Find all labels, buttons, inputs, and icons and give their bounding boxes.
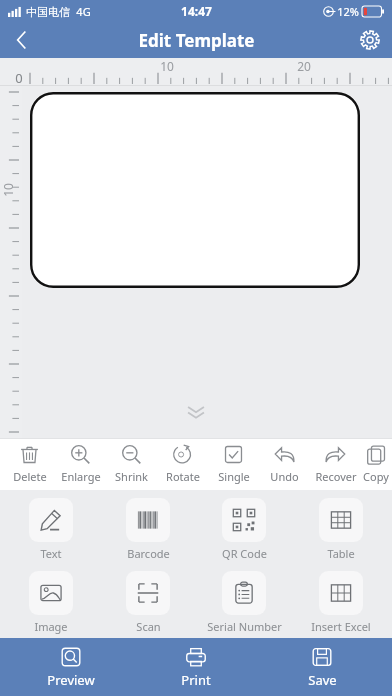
staticText: Print (181, 671, 211, 689)
staticText: Copy (363, 469, 389, 484)
staticText: Enlarge (61, 469, 101, 484)
button[interactable]: Table (295, 498, 387, 561)
button[interactable]: Enlarge (55, 438, 106, 490)
button[interactable]: Shrink (106, 438, 157, 490)
staticText: Edit Template (138, 29, 255, 52)
button[interactable]: Scan (102, 571, 194, 634)
button[interactable]: Back (0, 22, 44, 58)
staticText: Serial Number (207, 619, 282, 634)
staticText: Delete (13, 469, 47, 484)
button[interactable]: Print (141, 638, 251, 696)
staticText: 10 (160, 58, 174, 74)
staticText: Save (308, 671, 337, 689)
staticText: 0 (15, 69, 23, 87)
staticText: Recover (315, 469, 357, 484)
staticText: 20 (297, 58, 311, 74)
button[interactable]: Delete (4, 438, 55, 490)
staticText: Rotate (166, 469, 200, 484)
staticText: Barcode (127, 546, 170, 561)
button[interactable]: Settings (348, 22, 392, 58)
button[interactable]: Image (5, 571, 97, 634)
button[interactable]: QR Code (198, 498, 290, 561)
staticText: QR Code (222, 546, 267, 561)
button[interactable]: Rotate (157, 438, 208, 490)
staticText: 14:47 (181, 3, 212, 19)
staticText: 10 (0, 183, 16, 197)
staticText: Scan (136, 619, 161, 634)
staticText: Undo (270, 469, 299, 484)
staticText: Shrink (115, 469, 148, 484)
button[interactable]: Save (267, 638, 377, 696)
button[interactable]: Serial Number (198, 571, 290, 634)
button[interactable]: Copy (361, 438, 391, 490)
button[interactable]: Single (208, 438, 259, 490)
button[interactable]: Barcode (102, 498, 194, 561)
staticText: Single (218, 469, 250, 484)
button[interactable]: Undo (259, 438, 310, 490)
staticText: 12% (337, 4, 359, 19)
staticText: 4G (76, 4, 91, 19)
staticText: Insert Excel (311, 619, 371, 634)
staticText: Image (34, 619, 68, 634)
staticText: Text (40, 546, 62, 561)
button[interactable]: Collapse (176, 402, 216, 424)
button[interactable]: Recover (310, 438, 361, 490)
button[interactable] (30, 92, 360, 288)
button[interactable]: Insert Excel (295, 571, 387, 634)
staticText: Table (327, 546, 355, 561)
staticText: 中国电信 (26, 5, 70, 19)
staticText: Preview (47, 671, 95, 689)
button[interactable]: Preview (16, 638, 126, 696)
button[interactable]: Text (5, 498, 97, 561)
